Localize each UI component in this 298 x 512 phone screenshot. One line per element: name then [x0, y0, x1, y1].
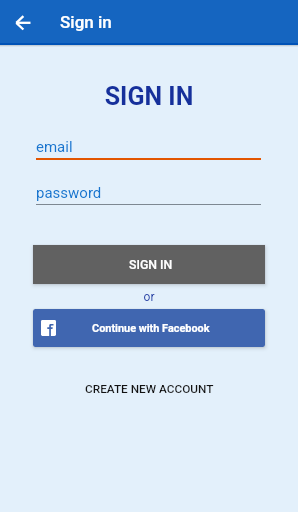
staticText: email	[36, 138, 73, 156]
staticText: Sign in	[60, 12, 112, 32]
staticText: or	[0, 290, 298, 304]
button[interactable]: Back	[0, 0, 46, 45]
button[interactable]: CREATE NEW ACCOUNT	[0, 382, 298, 396]
staticText: CREATE NEW ACCOUNT	[85, 382, 214, 396]
staticText: password	[36, 184, 102, 202]
staticText: Continue with Facebook	[92, 322, 210, 335]
staticText: SIGN IN	[129, 258, 173, 272]
staticText: SIGN IN	[0, 82, 298, 111]
button[interactable]: SIGN IN	[33, 245, 265, 284]
button[interactable]: Continue with Facebook	[33, 309, 265, 347]
